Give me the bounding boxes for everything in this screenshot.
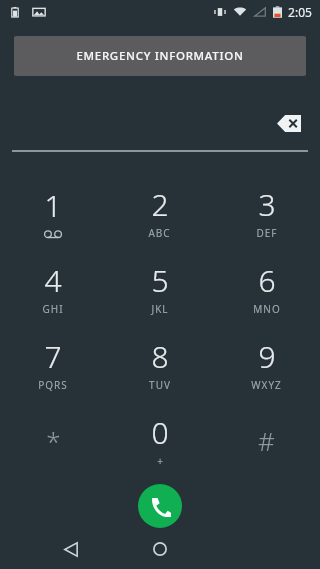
staticText: + xyxy=(157,454,164,468)
staticText: ABC xyxy=(148,226,171,240)
button[interactable]: 6 xyxy=(213,250,320,326)
staticText: 5 xyxy=(151,260,169,301)
button[interactable]: # xyxy=(213,402,320,478)
staticText: # xyxy=(258,423,275,458)
button[interactable]: Home xyxy=(143,532,177,566)
button[interactable]: 1 xyxy=(0,174,106,250)
button[interactable]: Back xyxy=(54,532,88,566)
staticText: 3 xyxy=(258,184,276,225)
staticText: 9 xyxy=(258,336,276,377)
button[interactable]: 7 xyxy=(0,326,106,402)
staticText: 7 xyxy=(44,336,62,377)
button[interactable]: 9 xyxy=(213,326,320,402)
button[interactable]: * xyxy=(0,402,106,478)
button[interactable]: 0 xyxy=(106,402,213,478)
staticText: 4 xyxy=(44,260,62,301)
button[interactable]: 5 xyxy=(106,250,213,326)
staticText: EMERGENCY INFORMATION xyxy=(76,48,244,64)
staticText: WXYZ xyxy=(251,378,282,392)
staticText: 8 xyxy=(151,336,169,377)
staticText: 0 xyxy=(151,412,169,453)
staticText: * xyxy=(46,423,61,458)
button[interactable]: 2 xyxy=(106,174,213,250)
staticText: GHI xyxy=(42,302,64,316)
button[interactable]: EMERGENCY INFORMATION xyxy=(14,36,306,76)
button[interactable]: 4 xyxy=(0,250,106,326)
staticText: TUV xyxy=(149,378,171,392)
staticText: MNO xyxy=(253,302,281,316)
staticText: 2:05 xyxy=(288,4,312,20)
button[interactable]: Backspace xyxy=(272,106,306,140)
staticText: PQRS xyxy=(38,378,68,392)
staticText: 1 xyxy=(44,185,62,226)
button[interactable]: 3 xyxy=(213,174,320,250)
button[interactable]: 8 xyxy=(106,326,213,402)
staticText: 6 xyxy=(258,260,276,301)
staticText: 2 xyxy=(151,184,169,225)
staticText: DEF xyxy=(256,226,278,240)
staticText: JKL xyxy=(151,302,169,316)
button[interactable]: Call xyxy=(138,484,182,528)
